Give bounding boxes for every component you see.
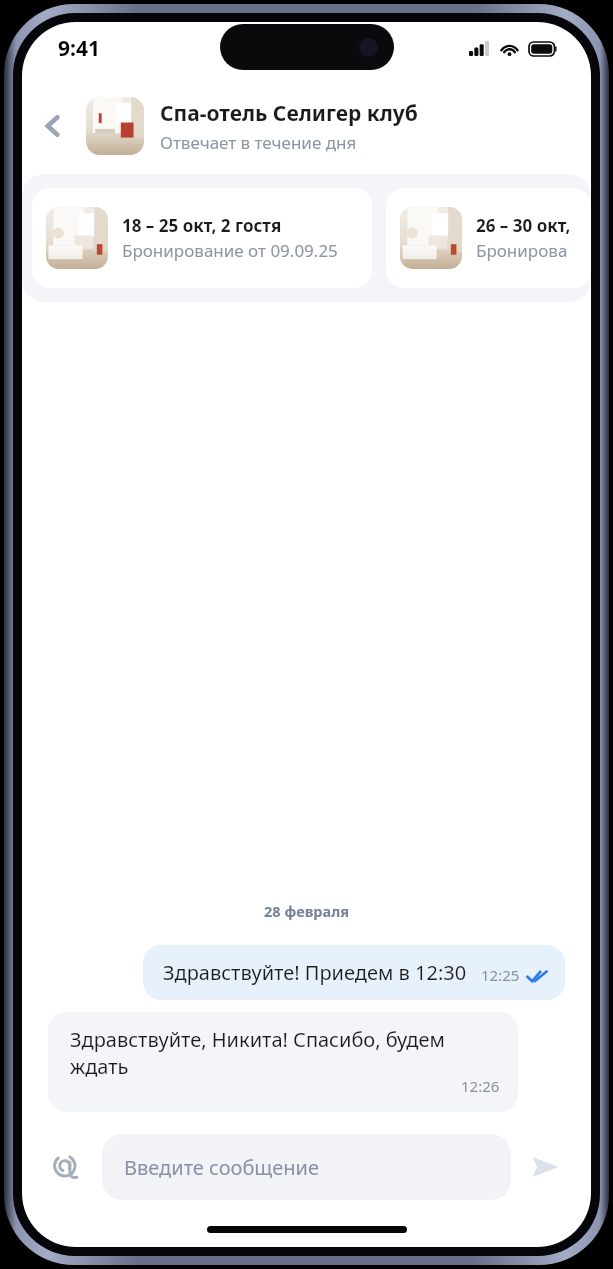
staticText: Спа-отель Селигер клуб (160, 99, 418, 128)
staticText: 12:26 (461, 1076, 500, 1096)
button[interactable]: Здравствуйте, Никита! Спасибо, будем жда… (48, 1012, 518, 1112)
button[interactable]: 26 – 30 окт, 2 гостя (386, 188, 591, 288)
staticText: Здравствуйте, Никита! Спасибо, будем жда… (70, 1026, 500, 1080)
staticText: 9:41 (58, 34, 100, 63)
staticText: Здравствуйте! Приедем в 12:30 (163, 959, 467, 986)
button[interactable]: Прикрепить файл (44, 1145, 88, 1189)
staticText: Отвечает в течение дня (160, 131, 357, 154)
staticText: 28 февраля (22, 901, 591, 921)
button[interactable]: Назад (30, 103, 76, 149)
staticText: 18 – 25 окт, 2 гостя (122, 214, 282, 237)
staticText: Бронирование от 09.09.25 (122, 239, 338, 262)
button[interactable]: 18 – 25 окт, 2 гостя (32, 188, 372, 288)
button[interactable]: Здравствуйте! Приедем в 12:30 (143, 945, 565, 1000)
staticText: Введите сообщение (124, 1154, 320, 1181)
staticText: Бронирование от 10.09.25 (476, 239, 577, 262)
button[interactable]: Отправить (521, 1143, 569, 1191)
staticText: 12:25 (481, 965, 520, 985)
button[interactable]: Введите сообщение (102, 1134, 511, 1200)
staticText: 26 – 30 окт, 2 гостя (476, 214, 577, 237)
